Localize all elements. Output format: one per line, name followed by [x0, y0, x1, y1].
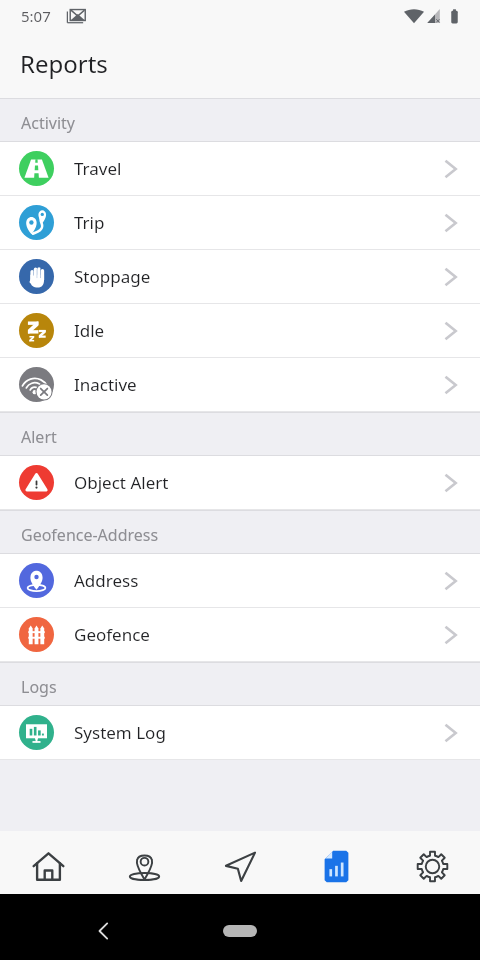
button[interactable]: Address [0, 554, 480, 608]
button[interactable]: Navigate [192, 831, 288, 894]
staticText: Object Alert [74, 471, 169, 494]
staticText: Logs [21, 676, 57, 698]
button[interactable]: Travel [0, 142, 480, 196]
button[interactable]: System Log [0, 706, 480, 760]
staticText: Trip [74, 211, 105, 234]
staticText: 5:07 [21, 6, 51, 26]
button[interactable]: Places [96, 831, 192, 894]
button[interactable]: Home [0, 831, 96, 894]
staticText: Activity [21, 112, 76, 134]
other: Back [96, 921, 110, 941]
staticText: Geofence [74, 623, 150, 646]
staticText: System Log [74, 721, 166, 744]
button[interactable]: Trip [0, 196, 480, 250]
staticText: Address [74, 569, 139, 592]
staticText: Reports [20, 47, 108, 80]
button[interactable]: Geofence [0, 608, 480, 662]
button[interactable]: Idle [0, 304, 480, 358]
button[interactable]: Stoppage [0, 250, 480, 304]
staticText: Travel [74, 157, 122, 180]
staticText: Alert [21, 426, 57, 448]
staticText: Idle [74, 319, 105, 342]
staticText: Inactive [74, 373, 137, 396]
button[interactable]: Inactive [0, 358, 480, 412]
button[interactable]: Object Alert [0, 456, 480, 510]
button[interactable]: Reports [288, 831, 384, 894]
staticText: Stoppage [74, 265, 151, 288]
staticText: Geofence-Address [21, 524, 159, 546]
button[interactable]: Settings [384, 831, 480, 894]
